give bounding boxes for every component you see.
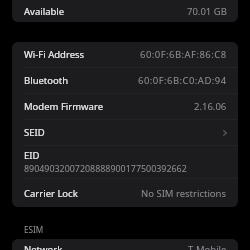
staticText: 2.16.06 <box>194 100 227 113</box>
staticText: Bluetooth <box>24 74 69 87</box>
staticText: SEID <box>24 126 45 139</box>
button[interactable]: SEID <box>12 120 238 145</box>
staticText: Carrier Lock <box>24 187 78 200</box>
button[interactable]: Wi-Fi Address <box>12 42 238 67</box>
staticText: Wi-Fi Address <box>24 48 85 61</box>
staticText: EID <box>24 149 40 162</box>
other: Show details <box>221 129 229 137</box>
staticText: Network <box>24 243 63 250</box>
staticText: 70.01 GB <box>187 5 227 18</box>
button[interactable]: Bluetooth <box>12 68 238 93</box>
staticText: 60:0F:6B:AF:86:C8 <box>140 48 227 61</box>
staticText: ESIM <box>24 224 44 235</box>
staticText: 89049032007208888900177500392662 <box>24 162 187 174</box>
staticText: No SIM restrictions <box>141 187 227 200</box>
staticText: Modem Firmware <box>24 100 103 113</box>
staticText: Available <box>24 5 65 18</box>
button[interactable]: Network <box>12 239 238 250</box>
staticText: 60:0F:6B:C0:AD:94 <box>138 74 227 87</box>
staticText: T-Mobile <box>188 243 227 250</box>
button[interactable]: Available <box>12 0 238 22</box>
button[interactable]: EID <box>12 146 238 178</box>
button[interactable]: Modem Firmware <box>12 94 238 119</box>
button[interactable]: Carrier Lock <box>12 179 238 207</box>
